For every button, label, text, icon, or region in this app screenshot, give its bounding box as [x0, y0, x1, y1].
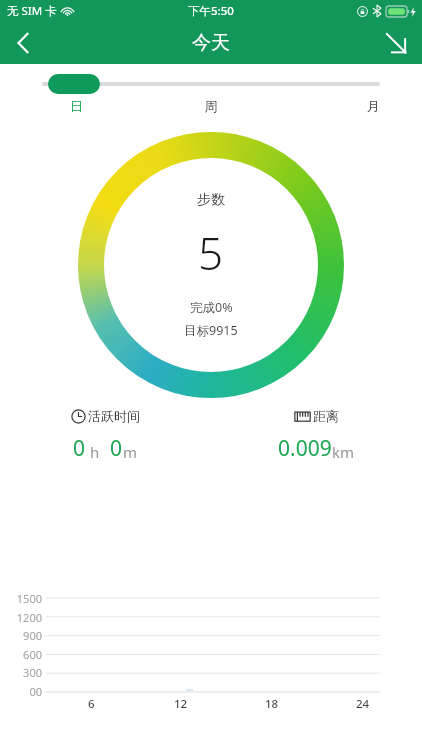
staticText: 距离 — [313, 408, 339, 424]
staticText: 6 — [88, 696, 95, 712]
staticText: 600 — [6, 647, 42, 662]
staticText: 24 — [356, 696, 370, 712]
staticText: 300 — [6, 665, 42, 680]
staticText: 活跃时间 — [88, 408, 140, 424]
staticText: m — [123, 442, 138, 462]
staticText: 无 SIM 卡 — [7, 3, 57, 19]
staticText: 1200 — [6, 610, 42, 625]
staticText: 900 — [6, 628, 42, 643]
staticText: 目标9915 — [184, 322, 238, 339]
staticText: km — [332, 442, 355, 462]
staticText: 月 — [274, 98, 380, 114]
button[interactable]: 月 — [274, 98, 400, 114]
staticText: 下午5:50 — [188, 3, 234, 19]
button[interactable]: 活跃时间 — [0, 408, 211, 463]
staticText: h — [86, 442, 100, 462]
staticText: 步数 — [197, 191, 225, 209]
staticText: 周 — [148, 98, 274, 114]
button[interactable]: Share — [370, 22, 422, 64]
staticText: 今天 — [192, 31, 230, 55]
staticText: 0 — [73, 434, 86, 463]
staticText: 0 — [110, 434, 123, 463]
staticText: 12 — [174, 696, 188, 712]
button[interactable]: 周 — [148, 98, 274, 114]
button[interactable]: 距离 — [211, 408, 422, 463]
staticText: 1500 — [6, 591, 42, 606]
staticText: 5 — [198, 223, 224, 283]
staticText: 日 — [70, 98, 148, 114]
button[interactable]: 日 — [22, 98, 148, 114]
staticText: 0.009 — [278, 434, 332, 463]
staticText: 00 — [6, 684, 42, 699]
staticText: 完成0% — [190, 299, 233, 316]
button[interactable]: Day week month selector — [48, 74, 100, 94]
staticText: 18 — [265, 696, 279, 712]
button[interactable]: Back — [0, 22, 46, 64]
